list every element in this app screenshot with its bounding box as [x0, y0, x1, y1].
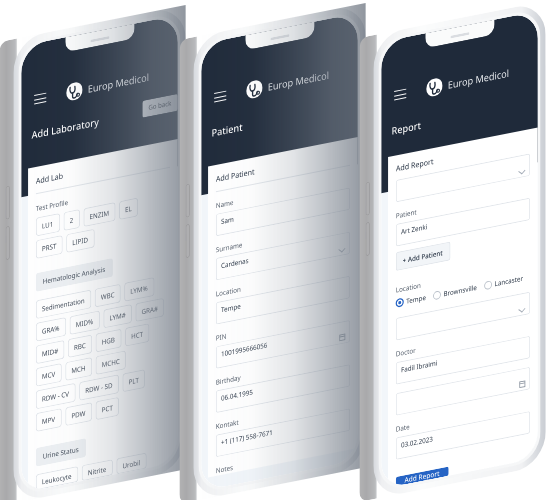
button[interactable]	[396, 153, 530, 202]
staticText: 2	[70, 215, 74, 225]
staticText: HGB	[102, 334, 116, 347]
button[interactable]: 1001995666056	[216, 320, 350, 369]
button[interactable]: Nitrite	[82, 459, 113, 481]
button[interactable]: Lancaster	[484, 273, 523, 290]
staticText: Europ Medicol	[448, 66, 509, 92]
staticText: Sedimentation	[42, 295, 85, 313]
staticText: Europ Medicol	[268, 68, 329, 94]
button[interactable]: + Add Patient	[396, 241, 450, 271]
button[interactable]: MCV	[36, 363, 62, 387]
button[interactable]: PRST	[36, 235, 63, 259]
button[interactable]: HGB	[96, 329, 122, 352]
button[interactable]: PCT	[96, 397, 119, 420]
staticText: MID%	[76, 316, 94, 329]
staticText: LIPID	[72, 234, 89, 247]
staticText: Urine Status	[43, 444, 79, 461]
button[interactable]: +1 (117) 558-7671	[216, 408, 350, 457]
staticText: RBC	[74, 340, 86, 352]
staticText: LU1	[42, 219, 54, 231]
staticText: EL	[125, 203, 132, 214]
button[interactable]: MID%	[70, 310, 100, 335]
staticText: Art Zenki	[401, 221, 428, 236]
staticText: Cardenas	[221, 255, 249, 270]
button[interactable]: LYM#	[103, 304, 132, 328]
staticText: PLT	[128, 375, 139, 386]
button[interactable]: Cardenas	[216, 231, 350, 281]
button[interactable]: Sedimentation	[36, 289, 91, 319]
staticText: Add Report	[396, 155, 434, 173]
staticText: Tempe	[221, 301, 241, 314]
button[interactable]: RBC	[68, 334, 92, 358]
staticText: PIN	[216, 331, 227, 342]
button[interactable]: Leukocyte	[36, 466, 78, 490]
staticText: MCHC	[102, 356, 120, 369]
button[interactable]: Brownsville	[433, 282, 477, 300]
staticText: MCH	[71, 363, 86, 375]
button[interactable]: LYM%	[124, 277, 154, 302]
button[interactable]: Urobil	[116, 452, 147, 474]
button[interactable]: Sam	[216, 187, 350, 236]
button[interactable]: RDW - CV	[36, 383, 76, 409]
button[interactable]: MPV	[36, 408, 62, 432]
button[interactable]: PLT	[122, 369, 145, 392]
button[interactable]: Fadil Ibraimi	[396, 336, 530, 385]
staticText: Location	[396, 280, 421, 295]
staticText: MCV	[42, 369, 56, 381]
staticText: Fadil Ibraimi	[401, 358, 437, 374]
button[interactable]: Tempe	[216, 276, 350, 325]
staticText: LYM#	[109, 310, 126, 322]
staticText: LYM%	[130, 283, 148, 296]
staticText: + Add Patient	[403, 247, 443, 265]
button[interactable]: 06.04.1995	[216, 364, 350, 413]
staticText: PRST	[42, 241, 57, 253]
button[interactable]: MCH	[65, 357, 92, 381]
staticText: MPV	[42, 414, 56, 426]
staticText: Tempe	[406, 292, 426, 306]
staticText: Sam	[221, 214, 234, 226]
button[interactable]: MCHC	[96, 350, 126, 375]
button[interactable]: LIPID	[66, 229, 95, 253]
staticText: Urobil	[122, 457, 141, 470]
button[interactable]: Tempe	[396, 292, 426, 308]
staticText: Add Report	[404, 468, 440, 485]
button[interactable]	[396, 291, 530, 340]
button[interactable]: GRA#	[135, 298, 164, 322]
staticText: Add Laboratory	[32, 115, 99, 142]
button[interactable]: Hematologic Analysis	[36, 258, 113, 292]
button[interactable]: Art Zenki	[396, 197, 530, 247]
staticText: GRA#	[141, 304, 158, 316]
staticText: 1001995666056	[221, 340, 268, 358]
staticText: 03.02.2023	[401, 434, 433, 449]
button[interactable]: Open navigation menu	[394, 89, 406, 100]
staticText: +1 (117) 558-7671	[221, 427, 273, 447]
staticText: Brownsville	[443, 282, 477, 298]
button[interactable]: Urine Status	[36, 438, 86, 467]
button[interactable]: RDW - SD	[79, 374, 119, 401]
button[interactable]: Go back	[142, 94, 178, 118]
button[interactable]: 03.02.2023	[396, 411, 530, 460]
staticText: Test Profile	[36, 197, 69, 213]
button[interactable]: HCT	[125, 323, 149, 347]
staticText: Location	[216, 284, 241, 298]
button[interactable]: MID#	[36, 340, 64, 364]
staticText: Lancaster	[495, 273, 523, 288]
button[interactable]: EL	[119, 197, 138, 220]
button[interactable]: 2	[64, 209, 80, 231]
staticText: HCT	[131, 329, 143, 341]
staticText: GRA%	[42, 323, 60, 336]
button[interactable]: PDW	[65, 402, 92, 426]
staticText: Birthday	[216, 372, 241, 387]
staticText: PCT	[102, 403, 113, 414]
button[interactable]	[396, 367, 530, 416]
button[interactable]: ENZIM	[83, 202, 115, 227]
staticText: WBC	[101, 289, 115, 302]
staticText: RDW - CV	[42, 389, 70, 404]
button[interactable]: Open navigation menu	[214, 91, 226, 102]
button[interactable]: Open navigation menu	[34, 93, 46, 104]
button[interactable]: Add Report	[396, 466, 449, 486]
staticText: Doctor	[396, 345, 416, 358]
button[interactable]: WBC	[95, 284, 121, 307]
button[interactable]: LU1	[36, 213, 60, 236]
button[interactable]: GRA%	[36, 317, 66, 342]
staticText: Date	[396, 421, 410, 434]
